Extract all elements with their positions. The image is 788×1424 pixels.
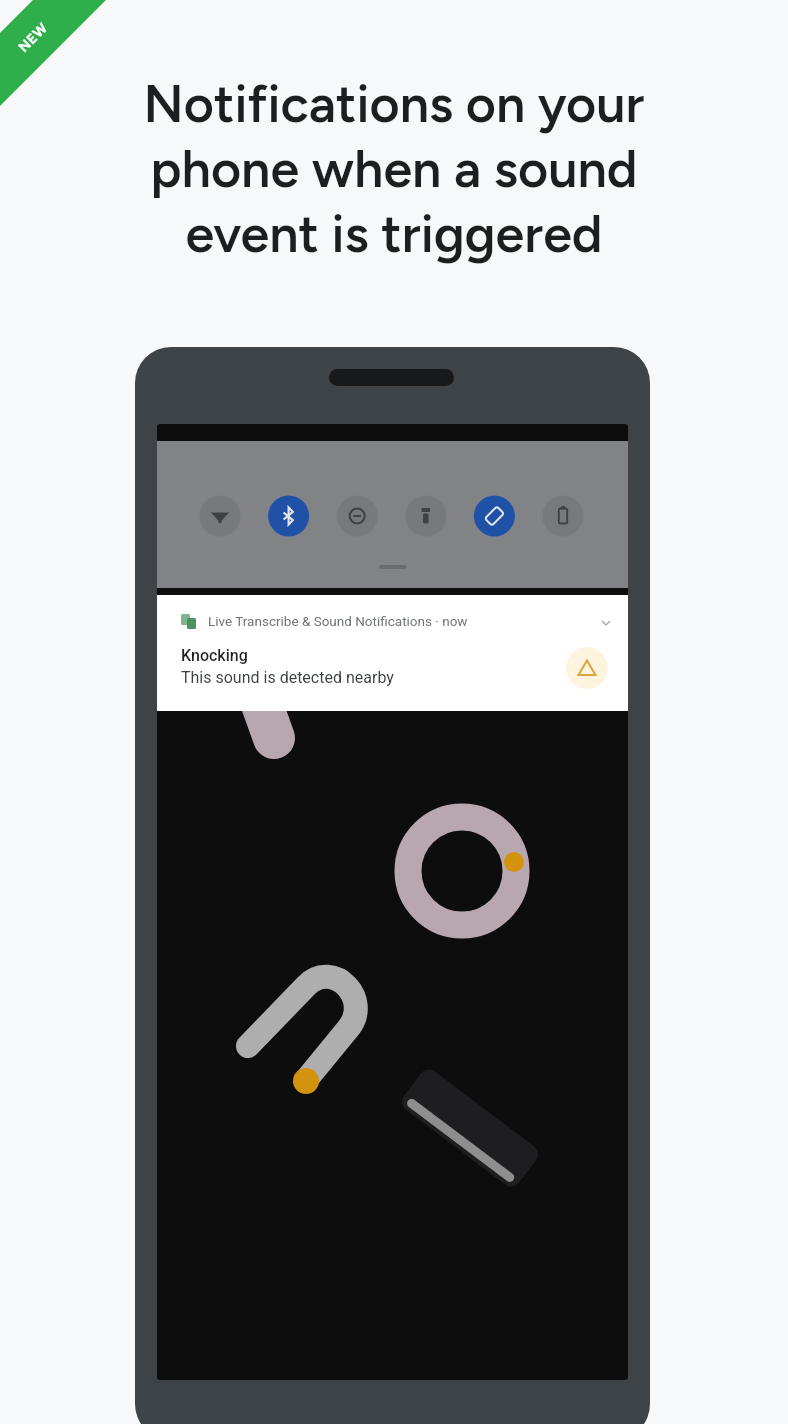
button[interactable]: Battery saver xyxy=(542,495,584,537)
staticText: Knocking xyxy=(181,646,248,665)
staticText: Live Transcribe & Sound Notifications · … xyxy=(208,613,468,629)
button[interactable]: Bluetooth xyxy=(268,495,310,537)
button[interactable]: Auto-rotate xyxy=(473,495,515,537)
button[interactable]: Live Transcribe & Sound Notifications · … xyxy=(157,595,628,711)
staticText: This sound is detected nearby xyxy=(181,668,394,687)
button[interactable]: Do not disturb xyxy=(336,495,378,537)
button[interactable]: Wi-Fi xyxy=(199,495,241,537)
staticText: NEW xyxy=(15,19,52,56)
button[interactable]: Flashlight xyxy=(405,495,447,537)
staticText: Notifications on your phone when a sound… xyxy=(0,73,788,265)
button[interactable]: New xyxy=(0,0,120,120)
